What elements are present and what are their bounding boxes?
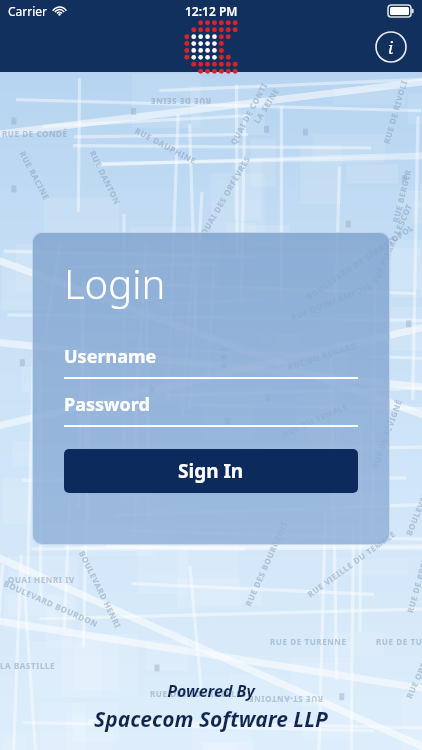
staticText: RUE DE TURENNE (270, 636, 347, 647)
staticText: RUE DE SEINE (150, 96, 211, 107)
staticText: Powered By (167, 680, 255, 702)
staticText: RUE DAUPHINE (133, 125, 199, 166)
staticText: Sign In (178, 458, 244, 484)
staticText: RUE DU TEMPLE (281, 400, 350, 439)
staticText: 12:12 PM (185, 3, 238, 19)
staticText: LA BASTILLE (0, 660, 56, 671)
staticText: QUAI DES ORFÈVRES (198, 154, 252, 237)
staticText: LA SEINE (251, 86, 281, 125)
staticText: Carrier (8, 3, 48, 19)
staticText: QUAI HENRI IV (8, 574, 75, 585)
staticText: BOULEVARD BEAUMARCHAIS (403, 414, 422, 537)
staticText: RUE DES TOURNELLES (150, 688, 247, 699)
staticText: BOULEVARD HENRI (77, 549, 124, 630)
staticText: Login (64, 256, 166, 310)
staticText: RUE DE BRETAGNE (404, 533, 422, 614)
staticText: Spacecom Software LLP (94, 705, 328, 734)
staticText: RUE ST-ANTOINE (248, 694, 323, 705)
staticText: RUE DE SÉVIGNÉ (369, 397, 404, 470)
staticText: A R I (217, 346, 228, 368)
button[interactable]: Password (64, 392, 358, 427)
staticText: Username (64, 344, 157, 369)
staticText: BOULEVARD DE SÉBASTOPOL (304, 221, 416, 302)
staticText: Password (64, 392, 150, 417)
staticText: RUE VIEILLE DU TEMPLE (305, 528, 398, 599)
button[interactable]: Username (64, 344, 358, 379)
button[interactable]: Info (374, 30, 408, 64)
button[interactable]: Sign In (64, 449, 358, 493)
staticText: RUE RACINE (17, 149, 53, 202)
staticText: RUE BERGER (389, 167, 413, 223)
staticText: RUE OBERKAMPF (403, 627, 422, 700)
staticText: RUE DES BOURGEOIS (242, 519, 290, 608)
staticText: BOULEVARD BOURDON (2, 577, 101, 629)
staticText: i (388, 36, 394, 59)
staticText: RUE DE TUR (376, 636, 422, 647)
staticText: QUAI DE CONTI (227, 80, 269, 147)
staticText: RUE PIERRE LESCOT (369, 201, 414, 285)
staticText: RUE DE CONDÉ (2, 128, 68, 139)
staticText: RUE DE RIVOLI (381, 78, 409, 145)
staticText: RUE DANTON (88, 149, 123, 206)
